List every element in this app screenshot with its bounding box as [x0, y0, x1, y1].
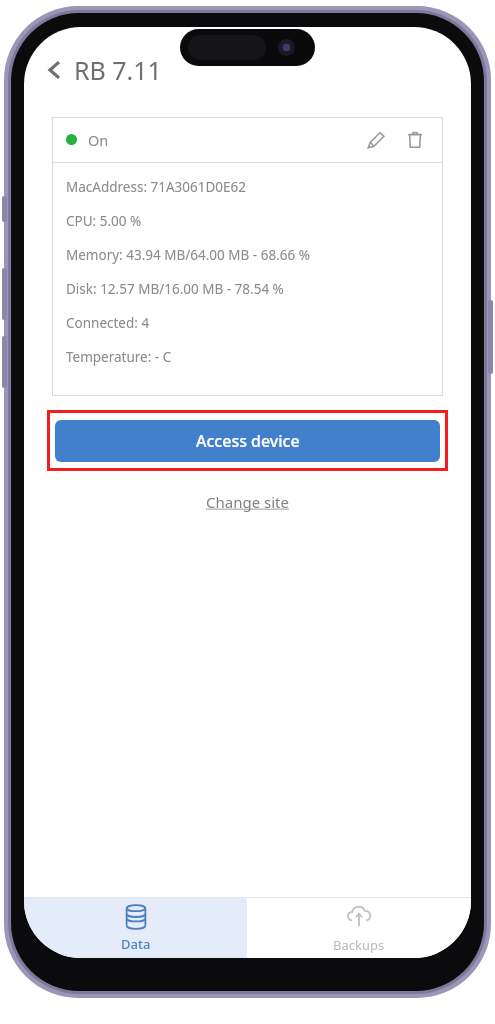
button[interactable]: Data	[24, 898, 247, 958]
staticText: Backups	[333, 936, 385, 954]
staticText: Connected: 4	[66, 314, 150, 332]
staticText: Access device	[196, 430, 300, 452]
staticText: RB 7.11	[74, 53, 162, 87]
staticText: Temperature: - C	[66, 348, 172, 366]
staticText: Data	[121, 935, 151, 953]
button[interactable]: Back	[40, 55, 70, 85]
staticText: Change site	[206, 492, 289, 512]
staticText: MacAddress: 71A3061D0E62	[66, 178, 246, 196]
staticText: Disk: 12.57 MB/16.00 MB - 78.54 %	[66, 280, 284, 298]
button[interactable]: Delete	[401, 126, 429, 154]
staticText: On	[88, 130, 109, 150]
button[interactable]: Access device	[55, 420, 440, 462]
staticText: CPU: 5.00 %	[66, 212, 142, 230]
button[interactable]: Change site	[196, 488, 299, 516]
button[interactable]: Edit	[361, 126, 389, 154]
button[interactable]: Backups	[247, 898, 471, 958]
staticText: Memory: 43.94 MB/64.00 MB - 68.66 %	[66, 246, 310, 264]
